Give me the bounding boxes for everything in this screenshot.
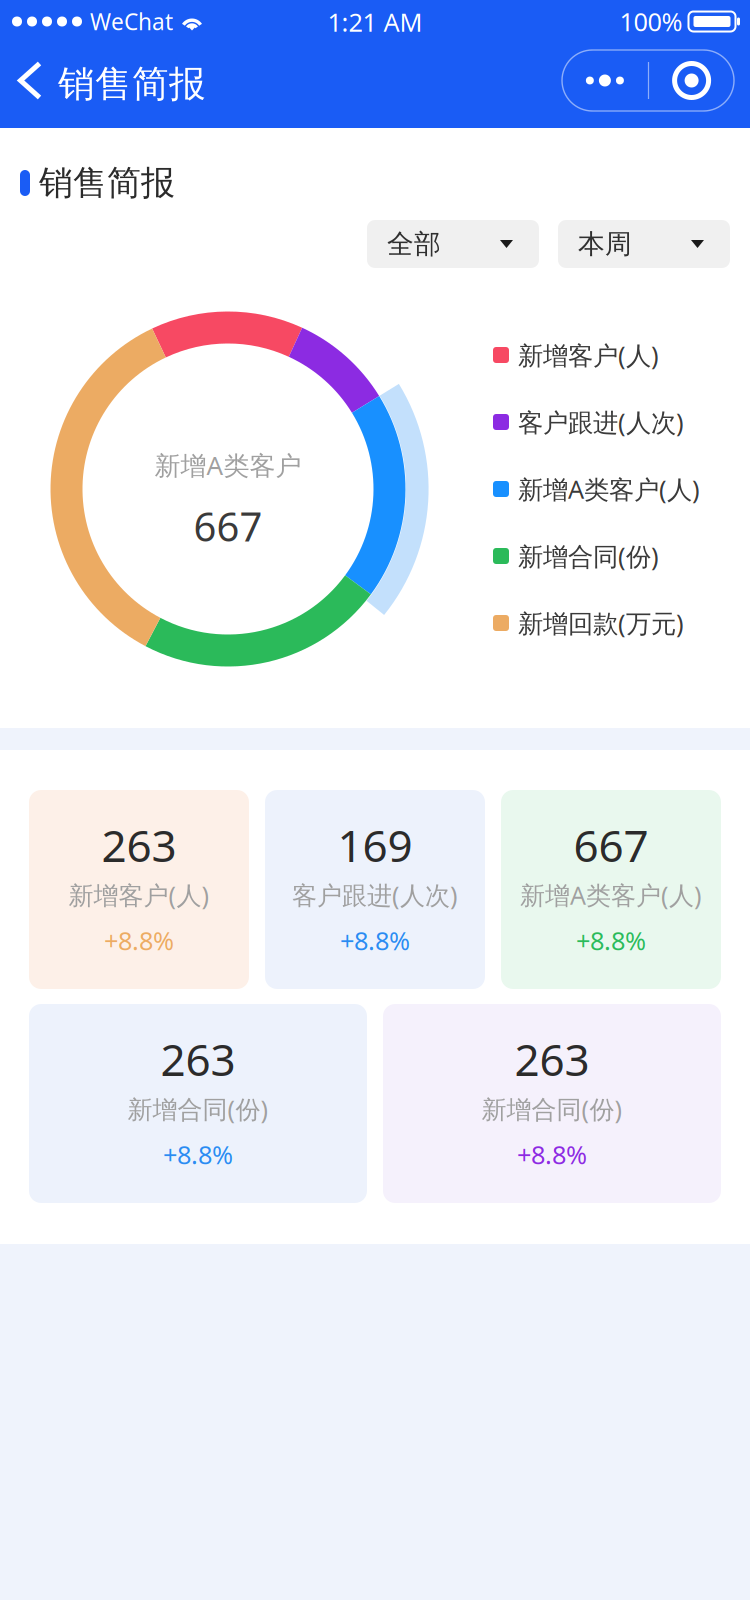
staticText: 263 [160, 1029, 235, 1089]
staticText: 销售简报 [39, 162, 175, 204]
staticText: 新增A类客户(人) [520, 878, 702, 912]
staticText: 客户跟进(人次) [292, 878, 458, 912]
button[interactable]: More [562, 50, 648, 111]
staticText: 新增合同(份) [127, 1092, 268, 1126]
button[interactable]: 263 [29, 1004, 367, 1203]
staticText: 销售简报 [58, 61, 206, 107]
button[interactable]: 263 [383, 1004, 721, 1203]
staticText: 新增回款(万元) [518, 606, 684, 640]
button[interactable]: Close [649, 50, 734, 111]
button[interactable]: 667 [501, 790, 721, 989]
button[interactable]: 全部 [367, 220, 539, 268]
staticText: 全部 [387, 227, 441, 261]
button[interactable]: Back [2, 50, 58, 111]
staticText: 新增客户(人) [518, 338, 659, 372]
staticText: 667 [573, 815, 648, 875]
staticText: +8.8% [340, 923, 410, 958]
button[interactable]: 263 [29, 790, 249, 989]
staticText: 169 [337, 815, 412, 875]
staticText: 新增合同(份) [481, 1092, 622, 1126]
staticText: +8.8% [576, 923, 646, 958]
staticText: 本周 [578, 227, 632, 261]
staticText: 新增A类客户 [154, 447, 301, 483]
staticText: +8.8% [104, 923, 174, 958]
staticText: 263 [101, 815, 176, 875]
staticText: 263 [514, 1029, 589, 1089]
staticText: 客户跟进(人次) [518, 405, 684, 439]
staticText: 100% [619, 4, 682, 39]
staticText: 新增客户(人) [68, 878, 209, 912]
button[interactable]: 169 [265, 790, 485, 989]
staticText: +8.8% [163, 1137, 233, 1172]
staticText: +8.8% [517, 1137, 587, 1172]
button[interactable]: 本周 [558, 220, 730, 268]
staticText: 1:21 AM [327, 5, 422, 39]
staticText: 新增A类客户(人) [518, 472, 700, 506]
staticText: 新增合同(份) [518, 539, 659, 573]
staticText: WeChat [90, 6, 173, 37]
staticText: 667 [193, 499, 262, 553]
